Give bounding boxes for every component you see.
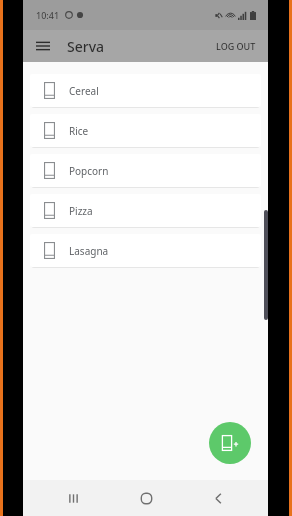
button[interactable]: Pizza xyxy=(30,194,261,227)
button[interactable]: Lasagna xyxy=(30,234,261,267)
button[interactable]: Cereal xyxy=(30,74,261,107)
button[interactable]: Popcorn xyxy=(30,154,261,187)
button[interactable]: Recent apps xyxy=(51,480,95,516)
staticText: Lasagna xyxy=(69,244,109,258)
staticText: Cereal xyxy=(69,84,99,98)
button[interactable]: Rice xyxy=(30,114,261,147)
button[interactable]: LOG OUT xyxy=(208,34,264,58)
staticText: Pizza xyxy=(69,204,93,218)
button[interactable]: Home xyxy=(124,480,168,516)
staticText: Popcorn xyxy=(69,164,109,178)
staticText: Serva xyxy=(67,37,105,56)
staticText: Rice xyxy=(69,124,89,138)
button[interactable]: Add device xyxy=(209,422,251,464)
staticText: LOG OUT xyxy=(216,40,256,52)
staticText: 10:41 xyxy=(36,9,60,21)
button[interactable]: Open navigation menu xyxy=(30,33,56,59)
button[interactable]: Back xyxy=(196,480,240,516)
